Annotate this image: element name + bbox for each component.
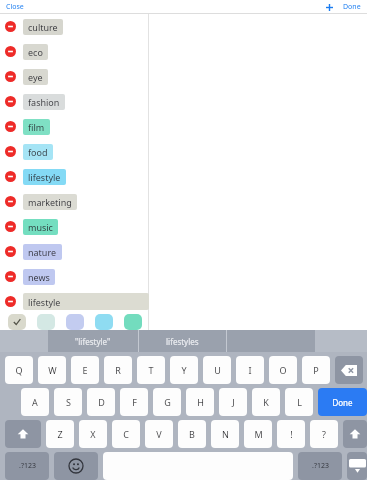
button[interactable]: Delete tag xyxy=(5,21,16,32)
button[interactable]: Delete tag xyxy=(5,96,16,107)
button[interactable]: K xyxy=(252,388,280,416)
button[interactable]: ! xyxy=(277,420,305,448)
button[interactable]: Delete tag xyxy=(5,171,16,182)
button[interactable]: Add tag xyxy=(323,1,335,13)
button[interactable]: .?123 xyxy=(298,452,342,480)
button[interactable]: lifestyles xyxy=(139,330,226,352)
button[interactable]: Delete tag xyxy=(5,271,16,282)
button[interactable]: Emoji xyxy=(54,452,98,480)
staticText: X xyxy=(90,428,96,440)
staticText: food xyxy=(28,146,48,158)
staticText: E xyxy=(82,364,88,376)
staticText: marketing xyxy=(28,196,72,208)
button[interactable]: L xyxy=(285,388,313,416)
staticText: N xyxy=(222,428,229,440)
button[interactable]: O xyxy=(269,356,297,384)
button[interactable]: Backspace xyxy=(335,356,363,384)
button[interactable]: Delete tag xyxy=(5,196,16,207)
staticText: L xyxy=(297,396,302,408)
button[interactable]: Delete tag xyxy=(0,139,367,164)
button[interactable]: C xyxy=(112,420,140,448)
button[interactable]: Delete tag xyxy=(0,114,367,139)
button[interactable]: P xyxy=(302,356,330,384)
button[interactable]: Shift xyxy=(5,420,41,448)
button[interactable]: Delete tag xyxy=(0,64,367,89)
button[interactable]: Delete tag xyxy=(0,14,367,39)
button[interactable]: Done xyxy=(318,388,367,416)
button[interactable]: T xyxy=(137,356,165,384)
button[interactable]: Close xyxy=(4,2,26,12)
button[interactable]: M xyxy=(244,420,272,448)
button[interactable]: Color 4 xyxy=(124,314,142,330)
button[interactable]: F xyxy=(120,388,148,416)
button[interactable]: I xyxy=(236,356,264,384)
staticText: S xyxy=(66,396,71,408)
staticText: V xyxy=(156,428,162,440)
button[interactable]: Delete tag xyxy=(5,146,16,157)
staticText: "lifestyle" xyxy=(75,336,111,347)
button[interactable]: Done xyxy=(341,2,363,12)
staticText: B xyxy=(189,428,195,440)
button[interactable] xyxy=(103,452,293,480)
button[interactable]: G xyxy=(153,388,181,416)
staticText: lifestyle xyxy=(28,171,61,183)
button[interactable]: .?123 xyxy=(5,452,49,480)
button[interactable]: R xyxy=(104,356,132,384)
button[interactable]: Delete tag xyxy=(0,264,367,289)
button[interactable]: Delete tag xyxy=(0,39,367,64)
staticText: eco xyxy=(28,46,43,58)
button[interactable]: ? xyxy=(310,420,338,448)
button[interactable]: H xyxy=(186,388,214,416)
button[interactable]: X xyxy=(79,420,107,448)
button[interactable]: Delete tag xyxy=(0,214,367,239)
button[interactable]: Delete tag xyxy=(5,221,16,232)
staticText: lifestyle xyxy=(28,296,61,308)
staticText: K xyxy=(263,396,269,408)
staticText: lifestyles xyxy=(166,336,199,347)
button[interactable]: J xyxy=(219,388,247,416)
button[interactable]: Delete tag xyxy=(5,121,16,132)
button[interactable]: Delete tag xyxy=(0,164,367,189)
button[interactable]: E xyxy=(71,356,99,384)
button[interactable]: Color 3 xyxy=(95,314,113,330)
button[interactable]: Color 1 xyxy=(37,314,55,330)
button[interactable]: Y xyxy=(170,356,198,384)
button[interactable]: Shift xyxy=(343,420,367,448)
button[interactable]: Delete tag xyxy=(5,246,16,257)
button[interactable]: Delete tag xyxy=(0,239,367,264)
button[interactable]: B xyxy=(178,420,206,448)
button[interactable]: Z xyxy=(46,420,74,448)
staticText: fashion xyxy=(28,96,60,108)
button[interactable]: Delete tag xyxy=(0,289,367,314)
staticText: Done xyxy=(343,2,361,12)
button[interactable]: S xyxy=(54,388,82,416)
staticText: I xyxy=(248,364,252,376)
button[interactable]: N xyxy=(211,420,239,448)
staticText: eye xyxy=(28,71,43,83)
button[interactable]: Delete tag xyxy=(5,71,16,82)
button[interactable]: "lifestyle" xyxy=(48,330,138,352)
staticText: C xyxy=(123,428,129,440)
button[interactable]: A xyxy=(21,388,49,416)
staticText: M xyxy=(254,428,263,440)
staticText: Q xyxy=(15,364,23,376)
button[interactable]: Delete tag xyxy=(0,189,367,214)
button[interactable]: W xyxy=(38,356,66,384)
staticText: .?123 xyxy=(312,461,329,471)
button[interactable]: D xyxy=(87,388,115,416)
button[interactable]: Delete tag xyxy=(5,46,16,57)
button[interactable]: U xyxy=(203,356,231,384)
button[interactable]: Hide keyboard xyxy=(347,452,367,480)
button[interactable]: V xyxy=(145,420,173,448)
staticText: Y xyxy=(181,364,187,376)
staticText: O xyxy=(279,364,287,376)
button[interactable]: Color 2 xyxy=(66,314,84,330)
button[interactable]: Q xyxy=(5,356,33,384)
button[interactable]: Delete tag xyxy=(0,89,367,114)
staticText: film xyxy=(28,121,45,133)
button[interactable]: Color 0 xyxy=(8,314,26,330)
staticText: G xyxy=(164,396,171,408)
staticText: nature xyxy=(28,246,57,258)
button[interactable]: Delete tag xyxy=(5,296,16,307)
